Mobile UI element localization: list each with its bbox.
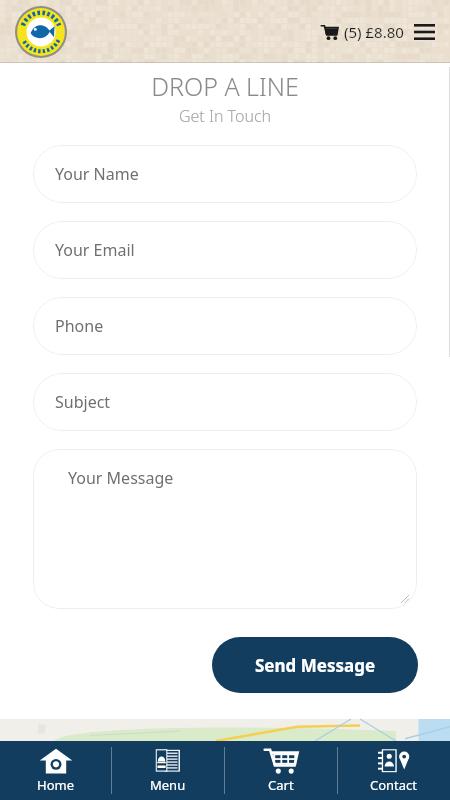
button[interactable]: Subject (33, 373, 417, 431)
button[interactable]: Send Message (212, 637, 418, 693)
button[interactable]: Menu (112, 741, 224, 800)
staticText: Menu (150, 776, 186, 794)
staticText: Send Message (255, 654, 376, 677)
button[interactable]: Home (0, 741, 111, 800)
button[interactable]: (5) £8.80 (321, 22, 404, 42)
button[interactable]: Fry Fare home (15, 6, 67, 58)
button[interactable]: Your Message (33, 449, 417, 609)
staticText: Subject (55, 391, 111, 413)
staticText: Get In Touch (0, 105, 450, 127)
staticText: (5) £8.80 (344, 22, 404, 42)
staticText: Home (37, 776, 74, 794)
staticText: Phone (55, 315, 104, 337)
staticText: Your Name (55, 163, 139, 185)
button[interactable]: Phone (33, 297, 417, 355)
staticText: DROP A LINE (0, 69, 450, 103)
button[interactable]: Map (0, 719, 450, 741)
staticText: Cart (268, 776, 294, 794)
staticText: Your Email (55, 239, 135, 261)
button[interactable]: Your Email (33, 221, 417, 279)
staticText: Your Message (68, 467, 174, 489)
button[interactable]: Open menu (410, 18, 438, 46)
button[interactable]: Contact (338, 741, 450, 800)
staticText: Contact (370, 776, 418, 794)
button[interactable]: Your Name (33, 145, 417, 203)
button[interactable]: Cart (225, 741, 337, 800)
